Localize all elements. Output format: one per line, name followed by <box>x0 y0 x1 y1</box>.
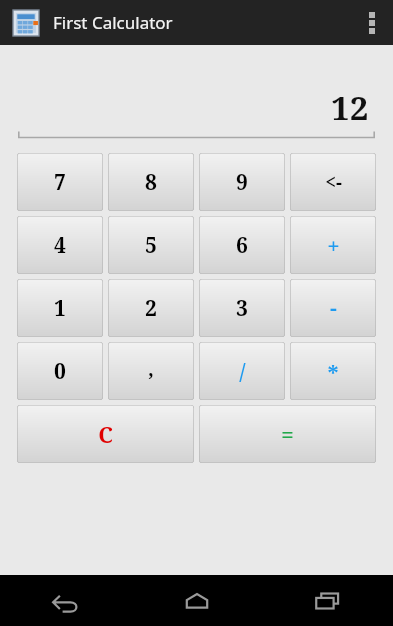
staticText: - <box>330 292 337 322</box>
button[interactable]: <- <box>290 153 376 211</box>
staticText: , <box>148 355 154 382</box>
button[interactable]: 4 <box>17 216 103 274</box>
button[interactable]: 5 <box>108 216 194 274</box>
button[interactable]: 0 <box>17 342 103 400</box>
button[interactable]: 6 <box>199 216 285 274</box>
button[interactable]: = <box>199 405 376 463</box>
staticText: 7 <box>54 168 66 197</box>
staticText: 5 <box>145 231 157 260</box>
staticText: 3 <box>236 294 248 323</box>
button[interactable]: C <box>17 405 194 463</box>
button[interactable]: 1 <box>17 279 103 337</box>
staticText: 6 <box>236 231 248 260</box>
button[interactable]: Back <box>0 575 131 626</box>
staticText: = <box>281 419 294 449</box>
button[interactable]: Home <box>131 575 262 626</box>
button[interactable]: Recent apps <box>262 575 393 626</box>
button[interactable]: 12 <box>18 81 375 139</box>
button[interactable]: More options <box>351 0 393 45</box>
button[interactable]: 7 <box>17 153 103 211</box>
button[interactable]: + <box>290 216 376 274</box>
button[interactable]: , <box>108 342 194 400</box>
button[interactable]: * <box>290 342 376 400</box>
staticText: 2 <box>145 294 157 323</box>
staticText: C <box>98 419 113 449</box>
staticText: / <box>239 356 246 386</box>
staticText: * <box>327 358 339 388</box>
button[interactable]: 2 <box>108 279 194 337</box>
staticText: 1 <box>54 294 66 323</box>
button[interactable]: 3 <box>199 279 285 337</box>
button[interactable]: 8 <box>108 153 194 211</box>
staticText: 12 <box>331 85 369 130</box>
staticText: 8 <box>145 168 157 197</box>
staticText: 4 <box>54 231 66 260</box>
staticText: 0 <box>54 357 66 386</box>
staticText: First Calculator <box>53 11 173 34</box>
button[interactable]: / <box>199 342 285 400</box>
button[interactable]: - <box>290 279 376 337</box>
staticText: <- <box>325 169 342 195</box>
button[interactable]: 9 <box>199 153 285 211</box>
staticText: 9 <box>236 168 248 197</box>
staticText: + <box>327 230 340 260</box>
